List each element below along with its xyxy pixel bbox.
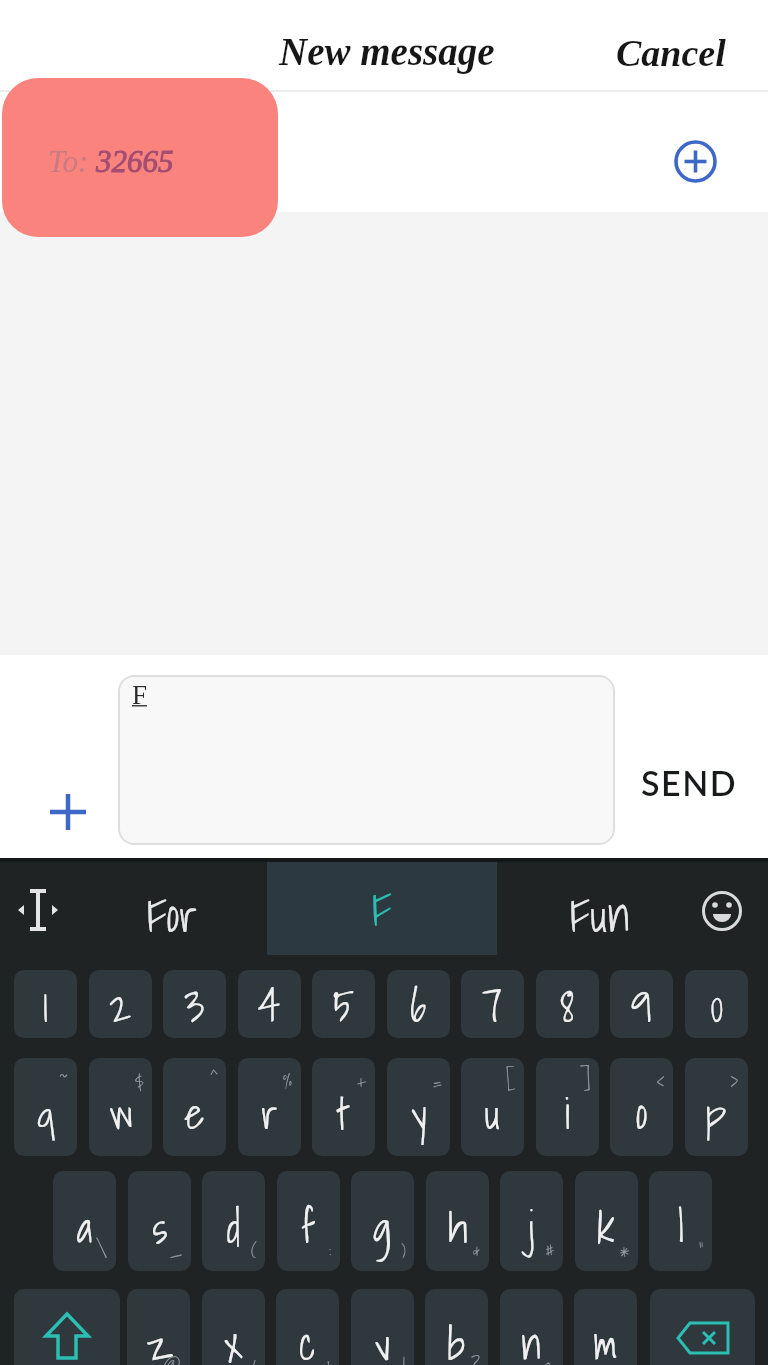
staticText: Fun bbox=[570, 878, 630, 940]
staticText: \ bbox=[96, 1235, 108, 1267]
button[interactable]: Cancel bbox=[616, 32, 726, 74]
button[interactable]: s bbox=[128, 1171, 191, 1271]
staticText: g bbox=[373, 1194, 392, 1261]
button[interactable]: t bbox=[312, 1058, 375, 1156]
button[interactable]: k bbox=[575, 1171, 638, 1271]
button[interactable]: 1 bbox=[14, 970, 77, 1038]
staticText: ] bbox=[580, 1066, 591, 1098]
staticText: ( bbox=[251, 1235, 257, 1267]
staticText: For bbox=[147, 878, 198, 940]
staticText: > bbox=[730, 1066, 740, 1098]
staticText: 3 bbox=[184, 970, 205, 1038]
staticText: : bbox=[329, 1235, 332, 1267]
button[interactable]: F bbox=[267, 862, 497, 955]
button[interactable] bbox=[650, 1289, 755, 1365]
staticText: 2 bbox=[109, 970, 132, 1038]
staticText: b bbox=[447, 1311, 466, 1365]
staticText: [ bbox=[506, 1066, 516, 1098]
button[interactable]: y bbox=[387, 1058, 450, 1156]
staticText: 7 bbox=[482, 970, 503, 1038]
button[interactable]: Fun bbox=[548, 878, 652, 940]
button[interactable]: w bbox=[89, 1058, 152, 1156]
button[interactable]: For bbox=[120, 878, 224, 940]
staticText: # bbox=[545, 1235, 555, 1267]
staticText: _ bbox=[170, 1235, 183, 1267]
staticText: 9 bbox=[631, 970, 652, 1038]
staticText: F bbox=[372, 872, 392, 946]
staticText: 8 bbox=[560, 970, 575, 1038]
button[interactable]: 4 bbox=[238, 970, 301, 1038]
button[interactable]: To: 32665 bbox=[2, 78, 278, 237]
button[interactable]: c bbox=[276, 1289, 339, 1365]
staticText: 4 bbox=[258, 970, 281, 1038]
staticText: To: 32665 bbox=[48, 144, 174, 178]
button[interactable] bbox=[46, 790, 90, 834]
staticText: n bbox=[521, 1311, 542, 1365]
button[interactable]: i bbox=[536, 1058, 599, 1156]
staticText: 6 bbox=[410, 970, 427, 1038]
staticText: = bbox=[433, 1066, 442, 1098]
button[interactable] bbox=[14, 1289, 120, 1365]
staticText: p bbox=[706, 1080, 727, 1147]
staticText: h bbox=[448, 1194, 468, 1261]
staticText: + bbox=[357, 1066, 367, 1098]
button[interactable]: v bbox=[351, 1289, 414, 1365]
staticText: ~ bbox=[59, 1066, 69, 1098]
button[interactable] bbox=[700, 889, 744, 933]
button[interactable]: n bbox=[500, 1289, 563, 1365]
staticText: j bbox=[529, 1194, 534, 1261]
staticText: t bbox=[338, 1080, 350, 1147]
staticText: a bbox=[77, 1194, 93, 1261]
staticText: New message bbox=[279, 30, 495, 73]
staticText: u bbox=[484, 1080, 501, 1147]
staticText: d bbox=[227, 1194, 241, 1261]
staticText: & bbox=[473, 1235, 481, 1267]
staticText: c bbox=[299, 1311, 316, 1365]
button[interactable]: u bbox=[461, 1058, 524, 1156]
staticText: w bbox=[109, 1080, 133, 1147]
button[interactable]: 7 bbox=[461, 970, 524, 1038]
staticText: s bbox=[152, 1194, 168, 1261]
button[interactable]: g bbox=[351, 1171, 414, 1271]
button[interactable]: z bbox=[127, 1289, 190, 1365]
button[interactable]: q bbox=[14, 1058, 77, 1156]
button[interactable]: f bbox=[277, 1171, 340, 1271]
staticText: o bbox=[636, 1080, 648, 1147]
staticText: < bbox=[656, 1066, 665, 1098]
staticText: ) bbox=[401, 1235, 406, 1267]
staticText: " bbox=[699, 1235, 704, 1267]
staticText: / bbox=[250, 1351, 257, 1365]
button[interactable]: o bbox=[610, 1058, 673, 1156]
button[interactable]: d bbox=[202, 1171, 265, 1271]
button[interactable]: 8 bbox=[536, 970, 599, 1038]
button[interactable]: 5 bbox=[312, 970, 375, 1038]
button[interactable]: j bbox=[500, 1171, 563, 1271]
button[interactable]: b bbox=[425, 1289, 488, 1365]
button[interactable]: SEND bbox=[641, 762, 738, 803]
button[interactable]: p bbox=[685, 1058, 748, 1156]
button[interactable]: 6 bbox=[387, 970, 450, 1038]
button[interactable]: 0 bbox=[685, 970, 748, 1038]
button[interactable]: 9 bbox=[610, 970, 673, 1038]
staticText: y bbox=[411, 1080, 427, 1147]
staticText: ? bbox=[471, 1351, 480, 1365]
button[interactable] bbox=[672, 138, 719, 185]
button[interactable]: e bbox=[163, 1058, 226, 1156]
button[interactable]: m bbox=[574, 1289, 637, 1365]
button[interactable] bbox=[16, 888, 60, 932]
button[interactable]: l bbox=[649, 1171, 712, 1271]
staticText: 2 bbox=[544, 1351, 555, 1365]
staticText: 1 bbox=[43, 970, 48, 1038]
staticText: ^ bbox=[210, 1066, 218, 1098]
button[interactable]: a bbox=[53, 1171, 116, 1271]
button[interactable]: 3 bbox=[163, 970, 226, 1038]
staticText: @ bbox=[163, 1351, 182, 1365]
staticText: * bbox=[620, 1235, 630, 1267]
button[interactable]: x bbox=[202, 1289, 265, 1365]
button[interactable]: r bbox=[238, 1058, 301, 1156]
staticText: 5 bbox=[333, 970, 355, 1038]
button[interactable]: 2 bbox=[89, 970, 152, 1038]
staticText: F bbox=[132, 680, 148, 710]
staticText: r bbox=[261, 1080, 278, 1147]
button[interactable]: h bbox=[426, 1171, 489, 1271]
